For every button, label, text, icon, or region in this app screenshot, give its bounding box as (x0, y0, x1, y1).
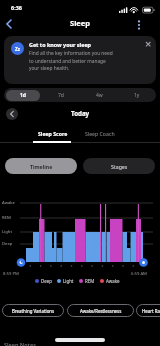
staticText: Deep (41, 278, 52, 284)
staticText: Timeline (30, 163, 53, 170)
button[interactable] (133, 18, 145, 32)
button[interactable]: 4w (80, 88, 118, 102)
button[interactable]: Sleep Coach (77, 130, 122, 144)
button[interactable]: Zz (4, 36, 156, 84)
staticText: Deep (2, 241, 13, 247)
staticText: REM (85, 278, 95, 284)
button[interactable]: Stages (83, 158, 155, 174)
staticText: Sleep Notes (4, 341, 36, 346)
staticText: Find all the key information you need to… (29, 50, 113, 71)
staticText: 1d (20, 92, 27, 99)
button[interactable]: Awake/Restlessness (67, 304, 134, 317)
staticText: Heart Rate (142, 308, 160, 314)
staticText: 6:36 (11, 4, 22, 11)
staticText: 1y (134, 92, 140, 99)
staticText: 6:59 AM (131, 271, 147, 277)
staticText: Sleep (70, 18, 91, 28)
staticText: Stages (111, 163, 128, 170)
button[interactable]: 1d (6, 90, 40, 101)
staticText: REM (2, 215, 11, 221)
staticText: Awake (106, 278, 120, 284)
button[interactable] (142, 38, 154, 50)
staticText: Light (63, 278, 74, 284)
staticText: Sleep Score (38, 130, 68, 137)
button[interactable] (2, 17, 16, 31)
staticText: 4w (96, 92, 103, 99)
staticText: Awake/Restlessness (80, 308, 122, 314)
button[interactable]: Breathing Variations (2, 304, 64, 317)
staticText: Light (2, 229, 12, 235)
button[interactable]: 7d (42, 88, 80, 102)
staticText: Today (71, 109, 90, 117)
staticText: Awake (2, 200, 15, 206)
button[interactable] (6, 108, 18, 120)
button[interactable]: Sleep Score (30, 130, 75, 144)
staticText: Breathing Variations (12, 308, 55, 314)
button[interactable]: 1y (118, 88, 156, 102)
staticText: 8:59 PM (3, 271, 19, 277)
staticText: 7d (58, 92, 64, 99)
button[interactable]: Heart Rate (136, 304, 160, 317)
staticText: Sleep Coach (85, 130, 115, 137)
staticText: Get to know your sleep (29, 41, 92, 48)
button[interactable]: Timeline (5, 158, 77, 174)
staticText: Zz (15, 46, 20, 52)
